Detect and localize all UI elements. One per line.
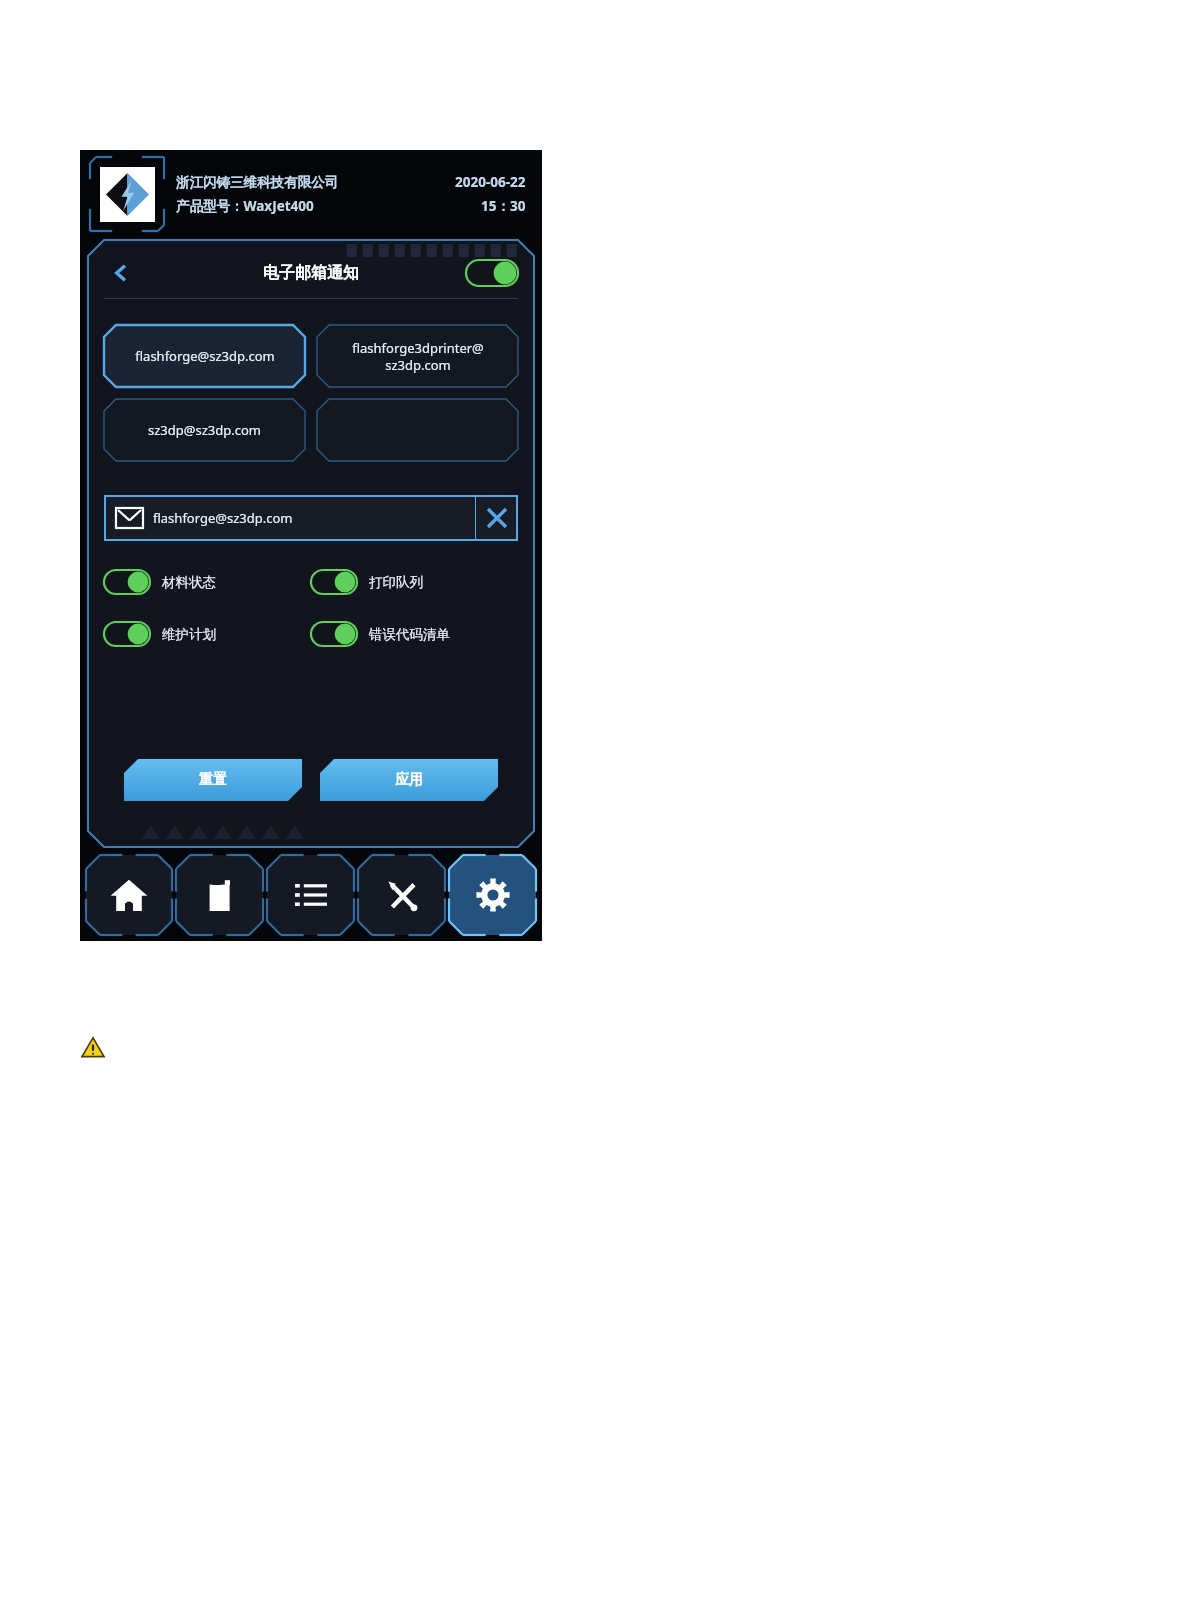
button[interactable]: Toggle xyxy=(311,619,518,649)
staticText: 电子邮箱通知 xyxy=(263,263,359,283)
button[interactable]: Toggle xyxy=(104,619,311,649)
staticText: 维护计划 xyxy=(162,626,216,643)
button[interactable]: Toggle xyxy=(104,567,311,597)
button[interactable]: 重置 xyxy=(124,759,302,801)
button[interactable]: flashforge@sz3dp.com xyxy=(104,495,518,541)
button[interactable]: Toggle xyxy=(311,570,357,594)
staticText: 重置 xyxy=(199,771,227,789)
button[interactable]: Back xyxy=(104,256,138,290)
button[interactable]: Home xyxy=(86,855,172,935)
button[interactable]: Queue xyxy=(267,855,354,935)
staticText: flashforge@sz3dp.com xyxy=(153,509,475,527)
button[interactable] xyxy=(317,399,518,461)
staticText: 错误代码清单 xyxy=(369,626,450,643)
button[interactable]: 应用 xyxy=(320,759,498,801)
staticText: sz3dp@sz3dp.com xyxy=(148,421,261,439)
button[interactable]: Settings xyxy=(449,855,536,935)
staticText: 应用 xyxy=(395,771,423,789)
staticText: 产品型号：WaxJet400 xyxy=(176,197,314,215)
button[interactable]: Toggle xyxy=(104,570,150,594)
staticText: 15：30 xyxy=(481,197,526,215)
button[interactable]: Toggle xyxy=(466,260,518,286)
staticText: 浙江闪铸三维科技有限公司 xyxy=(176,174,338,191)
button[interactable]: Toggle xyxy=(311,622,357,646)
staticText: flashforge3dprinter@ sz3dp.com xyxy=(352,339,484,374)
staticText: flashforge@sz3dp.com xyxy=(135,347,275,365)
button[interactable]: flashforge3dprinter@ sz3dp.com xyxy=(317,325,518,387)
button[interactable]: Clear xyxy=(476,495,518,541)
staticText: 2020-06-22 xyxy=(455,173,526,191)
button[interactable]: Material xyxy=(176,855,263,935)
button[interactable]: sz3dp@sz3dp.com xyxy=(104,399,305,461)
button[interactable]: Toggle xyxy=(104,622,150,646)
button[interactable]: flashforge@sz3dp.com xyxy=(104,325,305,387)
button[interactable]: Tools xyxy=(358,855,445,935)
staticText: 材料状态 xyxy=(162,574,216,591)
staticText: 打印队列 xyxy=(369,574,423,591)
button[interactable]: Toggle xyxy=(311,567,518,597)
